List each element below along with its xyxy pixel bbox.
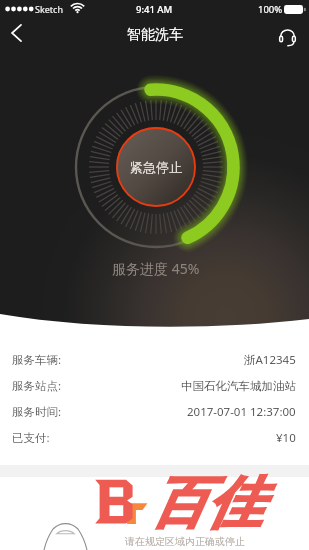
staticText: 2017-07-01 12:37:00 (187, 404, 296, 420)
staticText: 百佳 (150, 468, 262, 539)
staticText: 紧急停止 (130, 159, 182, 175)
button[interactable]: 紧急停止 (116, 127, 196, 207)
button[interactable]: Back (0, 12, 37, 54)
staticText: ¥10 (276, 430, 296, 446)
staticText: 100% (258, 3, 283, 16)
staticText: 请在规定区域内正确或停止 (125, 535, 245, 548)
staticText: 9:41 AM (136, 3, 173, 16)
staticText: 服务站点: (12, 378, 62, 394)
staticText: 智能洗车 (127, 26, 183, 44)
staticText: 浙A12345 (244, 352, 296, 368)
staticText: 中国石化汽车城加油站 (181, 379, 296, 393)
staticText: Sketch (35, 3, 63, 15)
staticText: 服务车辆: (12, 352, 62, 368)
staticText: 服务进度 45% (112, 259, 200, 278)
staticText: 服务时间: (12, 404, 62, 420)
staticText: 已支付: (12, 430, 50, 446)
button[interactable]: Customer service (266, 16, 308, 58)
